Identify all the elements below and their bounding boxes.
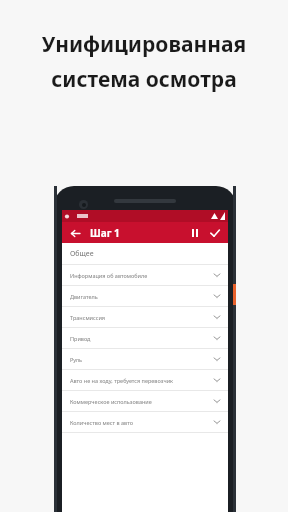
staticText: Количество мест в авто (70, 419, 133, 426)
staticText: система осмотра (14, 65, 274, 94)
staticText: Информация об автомобиле (70, 272, 148, 279)
button[interactable]: Коммерческое использование (62, 391, 228, 411)
button[interactable]: Back (68, 226, 82, 240)
staticText: Коммерческое использование (70, 398, 152, 405)
staticText: Унифицированная (14, 30, 274, 59)
button[interactable]: Pause (188, 226, 202, 240)
button[interactable]: Авто не на ходу, требуется перевозчик (62, 370, 228, 390)
button[interactable]: Общее (62, 243, 228, 264)
staticText: Общее (70, 249, 94, 259)
staticText: Двигатель (70, 293, 98, 300)
staticText: Привод (70, 335, 91, 342)
button[interactable]: Done (208, 226, 222, 240)
staticText: Трансмиссия (70, 314, 105, 321)
button[interactable]: Информация об автомобиле (62, 265, 228, 285)
staticText: Руль (70, 356, 83, 363)
button[interactable]: Трансмиссия (62, 307, 228, 327)
button[interactable]: Привод (62, 328, 228, 348)
button[interactable]: Количество мест в авто (62, 412, 228, 432)
staticText: Авто не на ходу, требуется перевозчик (70, 377, 173, 384)
button[interactable]: Двигатель (62, 286, 228, 306)
button[interactable]: Руль (62, 349, 228, 369)
staticText: Шаг 1 (90, 226, 120, 240)
